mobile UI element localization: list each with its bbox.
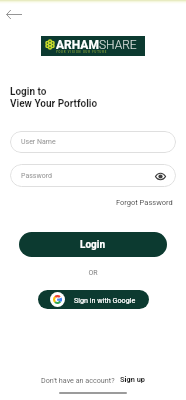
staticText: Password [21,172,52,180]
button[interactable]: User Name [10,131,176,153]
staticText: ARHAM [56,38,99,52]
button[interactable]: Forgot Password [113,197,176,208]
button[interactable]: Login [19,232,167,257]
button[interactable]: Password [10,164,176,187]
button[interactable]: Show password [153,169,167,183]
staticText: OR [10,269,176,277]
button[interactable]: Back [0,2,28,26]
button[interactable]: Sign up [120,375,146,384]
button[interactable]: Sign in with Google [38,290,149,309]
staticText: User Name [21,138,56,146]
staticText: Don't have an account? [41,376,115,384]
staticText: View Your Portfolio [10,98,98,110]
staticText: Forgot Password [116,198,173,207]
staticText: Login to [10,86,47,98]
staticText: SHARE [99,38,137,52]
staticText: Login [80,239,106,251]
staticText: Sign in with Google [74,296,136,304]
staticText: YOUR VISION OUR FUTURE [56,50,108,53]
staticText: Sign up [120,375,146,384]
